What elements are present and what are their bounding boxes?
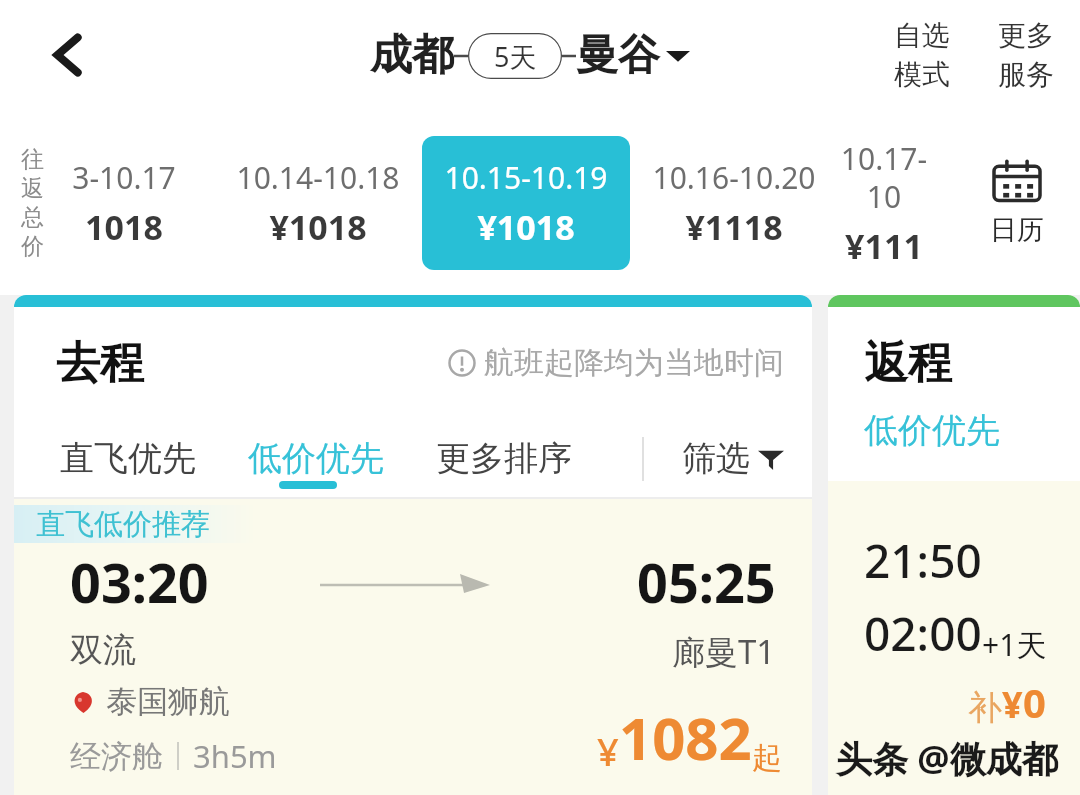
staticText: 10.14-10.18 [236,157,400,198]
staticText: 双流 [70,629,136,671]
staticText: 直飞优先 [60,437,196,480]
staticText: 服务 [998,57,1054,92]
staticText: 21:50 [864,529,982,592]
staticText: ¥1118 [685,204,783,250]
button[interactable]: Back [28,15,108,95]
staticText: ¥111 [845,223,923,269]
staticText: 10.16-10.20 [652,157,816,198]
staticText: 02:00 [864,602,982,665]
button[interactable]: 10.14-10.18 [214,136,422,270]
staticText: 头条 @微成都 [836,734,1058,783]
staticText: 3h5m [193,735,277,777]
button[interactable]: 10.16-10.20 [630,136,838,270]
staticText: 补 [968,686,1002,729]
button[interactable]: 筛选 [678,427,788,490]
staticText: 自选 [894,18,950,53]
staticText: 03:20 [70,545,209,619]
staticText: 廊曼T1 [672,629,776,674]
staticText: 航班起降均为当地时间 [484,344,784,382]
button[interactable]: 21:50 [828,481,1080,795]
staticText: 05:25 [637,545,776,619]
staticText: 5天 [494,38,537,75]
staticText: 10.17-10 [838,138,930,217]
staticText: 更多排序 [436,437,572,480]
staticText: 更多 [998,18,1054,53]
button[interactable]: 更多 [994,14,1058,96]
staticText: 直飞低价推荐 [36,506,210,543]
staticText: 曼谷 [576,29,660,82]
staticText: ¥1018 [477,204,575,250]
staticText: 低价优先 [864,409,1000,452]
button[interactable]: 3-10.17 [34,136,214,270]
button[interactable]: 日历 [984,153,1050,253]
button[interactable]: 成都 [370,29,690,82]
button[interactable]: 10.15-10.19 [422,136,630,270]
staticText: 10.15-10.19 [444,157,608,198]
staticText: 返 [21,174,44,203]
staticText: 返程 [864,336,952,391]
staticText: 起 [752,739,782,777]
staticText: 总 [21,203,44,232]
staticText: 1018 [85,204,163,250]
staticText: 经济舱 [70,737,163,776]
staticText: 去程 [56,336,144,391]
button[interactable]: 低价优先 [864,409,1000,452]
staticText: +1天 [982,624,1047,665]
staticText: 3-10.17 [72,157,176,198]
staticText: 泰国狮航 [106,682,230,721]
staticText: 模式 [894,57,950,92]
staticText: 0 [1023,675,1046,729]
staticText: ¥ [597,725,619,777]
button[interactable]: 直飞低价推荐 [14,499,812,795]
other: 日历 [994,159,1040,205]
staticText: 成都 [370,29,454,82]
button[interactable]: 自选 [890,14,954,96]
button[interactable]: 低价优先 [244,427,388,490]
staticText: 1082 [619,698,752,777]
staticText: 价 [21,232,44,261]
staticText: 低价优先 [248,437,384,480]
staticText: ¥ [1002,680,1023,729]
staticText: 筛选 [682,437,750,480]
button[interactable]: 更多排序 [432,427,576,490]
staticText: ¥1018 [269,204,367,250]
staticText: 往 [21,145,44,174]
staticText: 日历 [990,213,1044,247]
button[interactable]: 10.17-10 [838,136,930,270]
button[interactable]: 直飞优先 [56,427,200,490]
